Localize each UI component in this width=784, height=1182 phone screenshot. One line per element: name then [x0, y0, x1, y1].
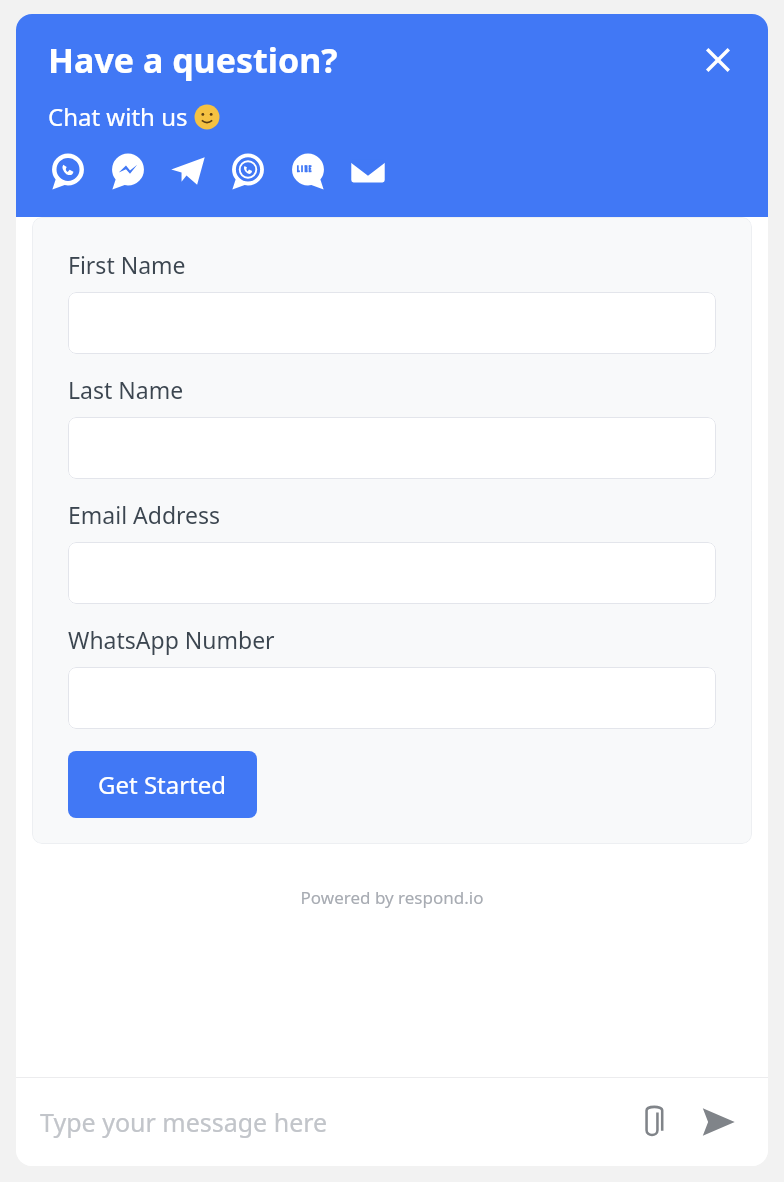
staticText: Powered by respond.io: [16, 886, 768, 909]
button[interactable]: [68, 292, 716, 354]
button[interactable]: Get Started: [68, 751, 257, 818]
staticText: First Name: [68, 249, 186, 280]
button[interactable]: Telegram: [168, 151, 208, 191]
button[interactable]: Viber: [228, 151, 268, 191]
button[interactable]: Type your message here: [40, 1105, 628, 1139]
staticText: Chat with us: [48, 100, 194, 133]
staticText: Have a question?: [48, 37, 692, 83]
button[interactable]: Send: [694, 1098, 742, 1146]
button[interactable]: [68, 542, 716, 604]
button[interactable]: LINE: [288, 151, 328, 191]
staticText: Get Started: [98, 768, 227, 801]
staticText: Email Address: [68, 499, 221, 530]
button[interactable]: WhatsApp: [48, 151, 88, 191]
button[interactable]: [68, 417, 716, 479]
staticText: WhatsApp Number: [68, 624, 275, 655]
staticText: Type your message here: [40, 1105, 328, 1139]
staticText: Last Name: [68, 374, 184, 405]
button[interactable]: Email: [348, 151, 388, 191]
button[interactable]: [68, 667, 716, 729]
button[interactable]: Attach file: [628, 1098, 676, 1146]
button[interactable]: Messenger: [108, 151, 148, 191]
button[interactable]: Close: [692, 34, 744, 86]
